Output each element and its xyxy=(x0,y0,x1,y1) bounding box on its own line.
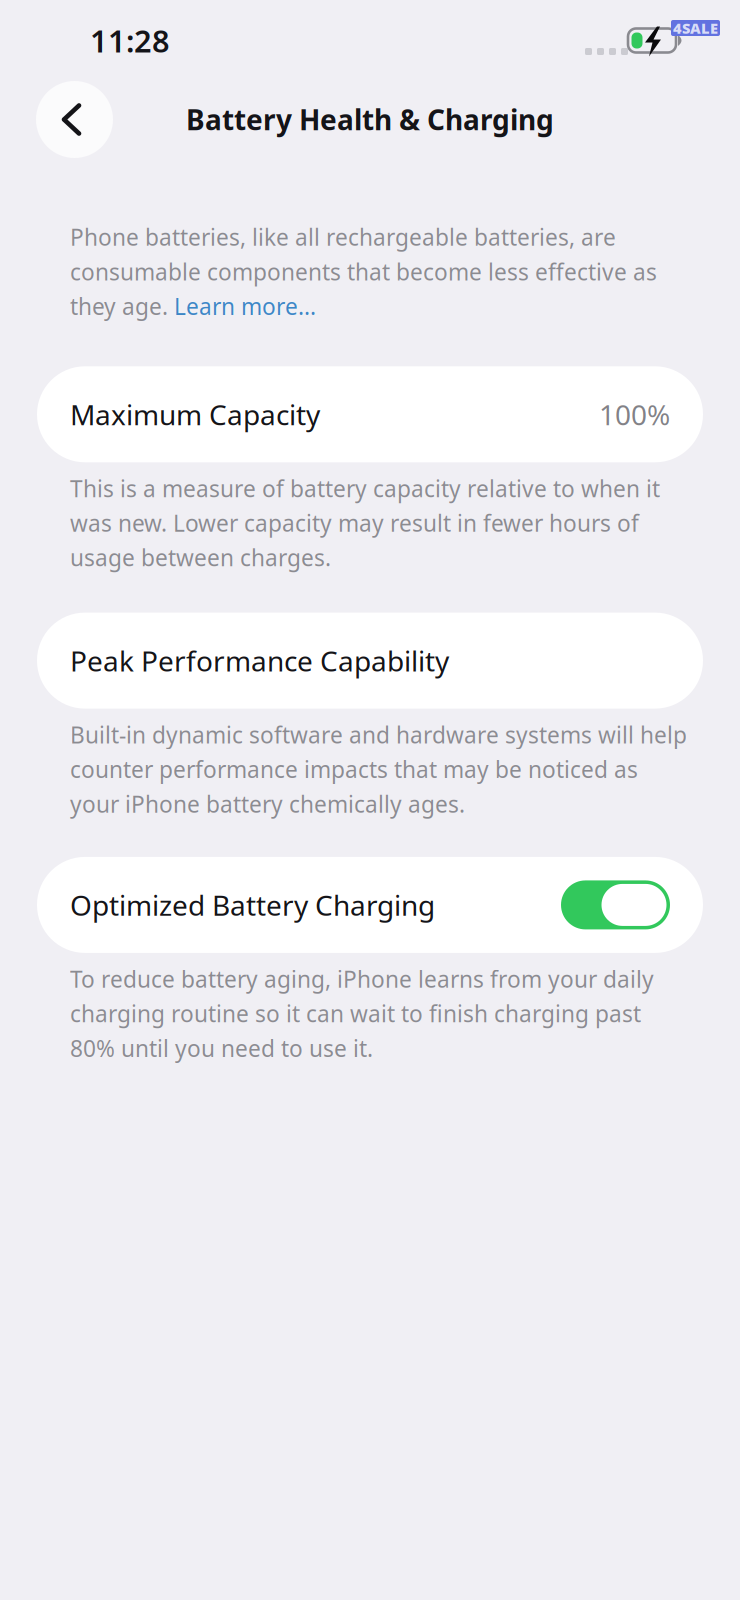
staticText: Maximum Capacity xyxy=(70,396,320,433)
staticText: 4SALE xyxy=(673,18,718,38)
staticText: Battery Health & Charging xyxy=(186,101,554,138)
staticText: Built-in dynamic software and hardware s… xyxy=(70,720,687,819)
button[interactable]: Peak Performance Capability xyxy=(37,613,703,709)
button[interactable]: Back xyxy=(36,81,113,158)
staticText: Optimized Battery Charging xyxy=(70,886,435,923)
staticText: To reduce battery aging, iPhone learns f… xyxy=(70,964,654,1063)
staticText: 100% xyxy=(599,396,670,433)
button[interactable]: Optimized Battery Charging xyxy=(561,880,670,929)
button[interactable]: Maximum Capacity xyxy=(37,366,703,462)
staticText: This is a measure of battery capacity re… xyxy=(70,473,660,573)
staticText: Peak Performance Capability xyxy=(70,642,449,679)
staticText: 11:28 xyxy=(90,20,170,61)
staticText: Phone batteries, like all rechargeable b… xyxy=(70,222,657,321)
